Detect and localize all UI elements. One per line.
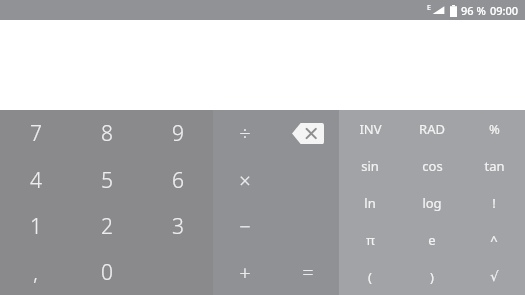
staticText: 7 [30,119,42,148]
staticText: 9 [172,119,184,148]
button[interactable]: 1 [0,203,71,249]
staticText: 4 [30,166,42,195]
staticText: , [33,259,38,286]
staticText: ÷ [239,120,251,147]
staticText: √ [490,269,499,284]
staticText: π [366,231,375,249]
button[interactable]: Delete [276,110,339,157]
staticText: 6 [172,166,184,195]
staticText: = [302,259,314,286]
staticText: 2 [101,212,113,241]
button[interactable]: log [401,184,463,221]
button[interactable]: 8 [71,110,142,157]
staticText: + [239,259,251,286]
staticText: 0 [101,258,113,287]
button[interactable]: × [213,157,276,203]
button[interactable]: ( [339,258,401,295]
button[interactable]: ÷ [213,110,276,157]
staticText: × [239,167,251,194]
staticText: log [422,194,442,212]
button[interactable]: + [213,249,276,295]
button[interactable]: 7 [0,110,71,157]
button[interactable]: , [0,249,71,295]
button[interactable]: = [276,249,339,295]
button[interactable]: π [339,221,401,258]
staticText: tan [484,157,505,175]
button[interactable]: e [401,221,463,258]
staticText: RAD [419,120,445,138]
button[interactable]: 9 [142,110,213,157]
button[interactable]: % [463,110,525,147]
staticText: 1 [30,212,42,241]
button[interactable]: ^ [463,221,525,258]
button[interactable]: ln [339,184,401,221]
button[interactable]: ! [463,184,525,221]
staticText: − [239,213,251,240]
staticText: e [428,231,436,249]
button[interactable]: 5 [71,157,142,203]
staticText: 3 [172,212,184,241]
button[interactable]: sin [339,147,401,184]
staticText: ( [368,268,372,286]
button[interactable]: − [213,203,276,249]
button[interactable]: cos [401,147,463,184]
button[interactable]: RAD [401,110,463,147]
staticText: 09:00 [490,3,519,18]
button[interactable]: 0 [71,249,142,295]
button[interactable]: ) [401,258,463,295]
button[interactable]: √ [463,258,525,295]
button[interactable]: INV [339,110,401,147]
staticText: 96 % [461,3,486,18]
button[interactable]: 4 [0,157,71,203]
staticText: 5 [101,166,113,195]
button[interactable]: 6 [142,157,213,203]
staticText: ! [492,194,496,212]
staticText: % [489,120,500,138]
staticText: INV [359,120,382,138]
button[interactable]: tan [463,147,525,184]
staticText: ^ [490,231,498,249]
staticText: cos [422,157,443,175]
staticText: E [427,3,431,13]
staticText: sin [361,157,379,175]
staticText: ) [430,268,434,286]
staticText: 8 [101,119,113,148]
staticText: ln [364,194,376,212]
button[interactable]: 2 [71,203,142,249]
button[interactable]: 3 [142,203,213,249]
